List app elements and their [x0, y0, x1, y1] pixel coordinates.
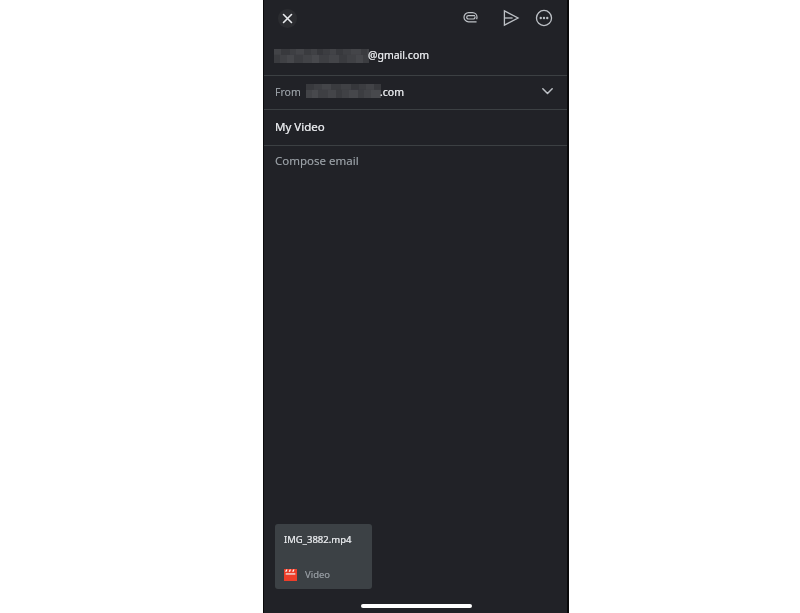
staticText: .com — [380, 85, 405, 99]
button[interactable]: Compose email — [263, 146, 569, 516]
button[interactable]: Close — [278, 9, 297, 28]
button[interactable]: More options — [531, 5, 557, 31]
staticText: Video — [305, 568, 331, 581]
button[interactable]: Send — [497, 5, 523, 31]
button[interactable]: Attach file — [458, 5, 484, 31]
staticText: Compose email — [275, 153, 359, 169]
staticText: My Video — [275, 119, 325, 135]
button[interactable]: @gmail.com — [263, 36, 569, 75]
staticText: From — [275, 85, 301, 99]
button[interactable]: From — [263, 76, 569, 109]
button[interactable]: Expand recipient details — [539, 81, 556, 98]
button[interactable]: IMG_3882.mp4 — [275, 524, 372, 589]
staticText: IMG_3882.mp4 — [284, 533, 352, 546]
staticText: @gmail.com — [368, 48, 430, 62]
button[interactable]: My Video — [263, 110, 569, 145]
